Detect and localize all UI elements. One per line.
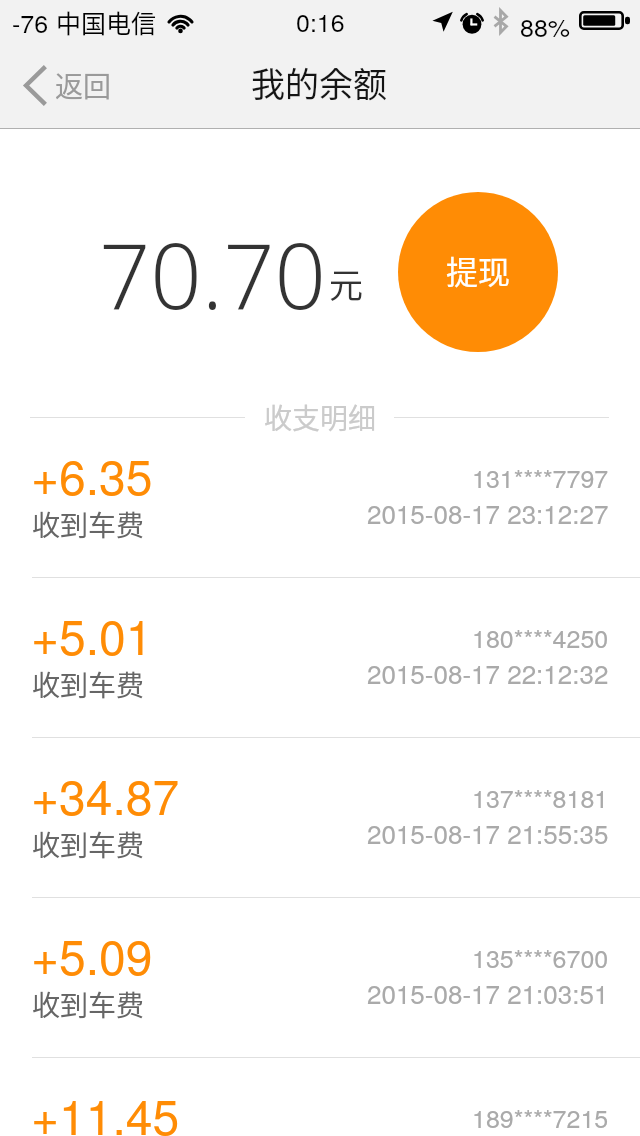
- staticText: -76: [12, 4, 56, 40]
- staticText: 收到车费: [32, 984, 145, 1025]
- staticText: 收到车费: [32, 824, 145, 865]
- button[interactable]: +6.35: [0, 418, 640, 578]
- staticText: 中国电信: [56, 4, 157, 40]
- staticText: 收到车费: [32, 664, 145, 705]
- staticText: 88%: [520, 8, 571, 44]
- button[interactable]: +5.01: [0, 578, 640, 738]
- staticText: +6.35: [31, 440, 153, 509]
- staticText: 2015-08-17 21:55:35: [367, 814, 609, 851]
- button[interactable]: +5.09: [0, 898, 640, 1058]
- staticText: 70.70: [99, 213, 326, 336]
- staticText: 元: [329, 259, 363, 308]
- staticText: 提现: [446, 247, 511, 293]
- staticText: 返回: [55, 65, 112, 106]
- staticText: +11.45: [31, 1080, 180, 1136]
- button[interactable]: +34.87: [0, 738, 640, 898]
- staticText: 2015-08-17 21:03:51: [367, 974, 609, 1011]
- staticText: +5.09: [31, 920, 153, 989]
- staticText: +5.01: [31, 600, 153, 669]
- staticText: 135****6700: [472, 939, 609, 975]
- staticText: 2015-08-17 22:12:32: [367, 654, 609, 691]
- staticText: 2015-08-17 23:12:27: [367, 494, 609, 531]
- button[interactable]: 提现: [398, 192, 558, 352]
- staticText: 131****7797: [472, 459, 609, 495]
- button[interactable]: +11.45: [0, 1058, 640, 1136]
- staticText: 0:16: [296, 3, 345, 39]
- staticText: 189****7215: [472, 1099, 609, 1135]
- staticText: +34.87: [31, 760, 180, 829]
- staticText: 收支明细: [264, 397, 377, 438]
- staticText: 180****4250: [472, 619, 609, 655]
- staticText: 137****8181: [472, 779, 609, 815]
- button[interactable]: 返回: [0, 44, 132, 127]
- staticText: 收到车费: [32, 504, 145, 545]
- staticText: 我的余额: [251, 58, 387, 107]
